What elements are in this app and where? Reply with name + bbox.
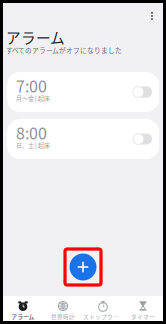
button[interactable]: More options: [143, 6, 161, 26]
button[interactable]: ストップウォ…: [83, 296, 123, 321]
button[interactable]: 世界時計: [43, 296, 83, 321]
staticText: 世界時計: [51, 312, 75, 320]
button[interactable]: アラーム: [3, 296, 43, 321]
staticText: 日、土 | 起床: [16, 141, 50, 149]
staticText: タイマー: [131, 312, 155, 320]
staticText: 7:00: [16, 74, 47, 97]
staticText: 8:00: [16, 121, 47, 144]
staticText: ストップウォ…: [83, 312, 123, 320]
staticText: すべてのアラームがオフになりました: [6, 45, 122, 55]
button[interactable]: 7:00: [7, 72, 159, 112]
button[interactable]: タイマー: [123, 296, 163, 321]
staticText: アラーム: [6, 26, 65, 48]
staticText: 月〜金 | 起床: [16, 94, 50, 102]
button[interactable]: 8:00: [7, 119, 159, 159]
staticText: アラーム: [11, 312, 34, 320]
